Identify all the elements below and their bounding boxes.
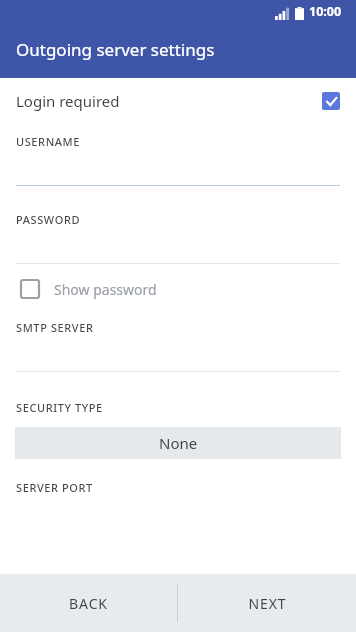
staticText: Login required bbox=[16, 91, 120, 111]
other: Login required, checked bbox=[322, 92, 340, 110]
button[interactable]: Login required bbox=[0, 78, 356, 124]
button[interactable]: BACK bbox=[0, 574, 177, 632]
staticText: Show password bbox=[54, 280, 157, 299]
button[interactable]: None bbox=[15, 427, 341, 459]
staticText: PASSWORD bbox=[16, 212, 81, 227]
button[interactable]: NEXT bbox=[178, 574, 356, 632]
staticText: NEXT bbox=[248, 594, 287, 613]
staticText: BACK bbox=[69, 594, 108, 613]
staticText: USERNAME bbox=[16, 134, 81, 149]
staticText: None bbox=[159, 433, 198, 453]
staticText: SERVER PORT bbox=[16, 480, 93, 495]
staticText: Outgoing server settings bbox=[16, 38, 215, 61]
button[interactable]: Show password bbox=[0, 270, 356, 308]
staticText: 10:00 bbox=[309, 3, 342, 20]
staticText: SMTP SERVER bbox=[16, 320, 94, 335]
staticText: SECURITY TYPE bbox=[16, 400, 103, 415]
